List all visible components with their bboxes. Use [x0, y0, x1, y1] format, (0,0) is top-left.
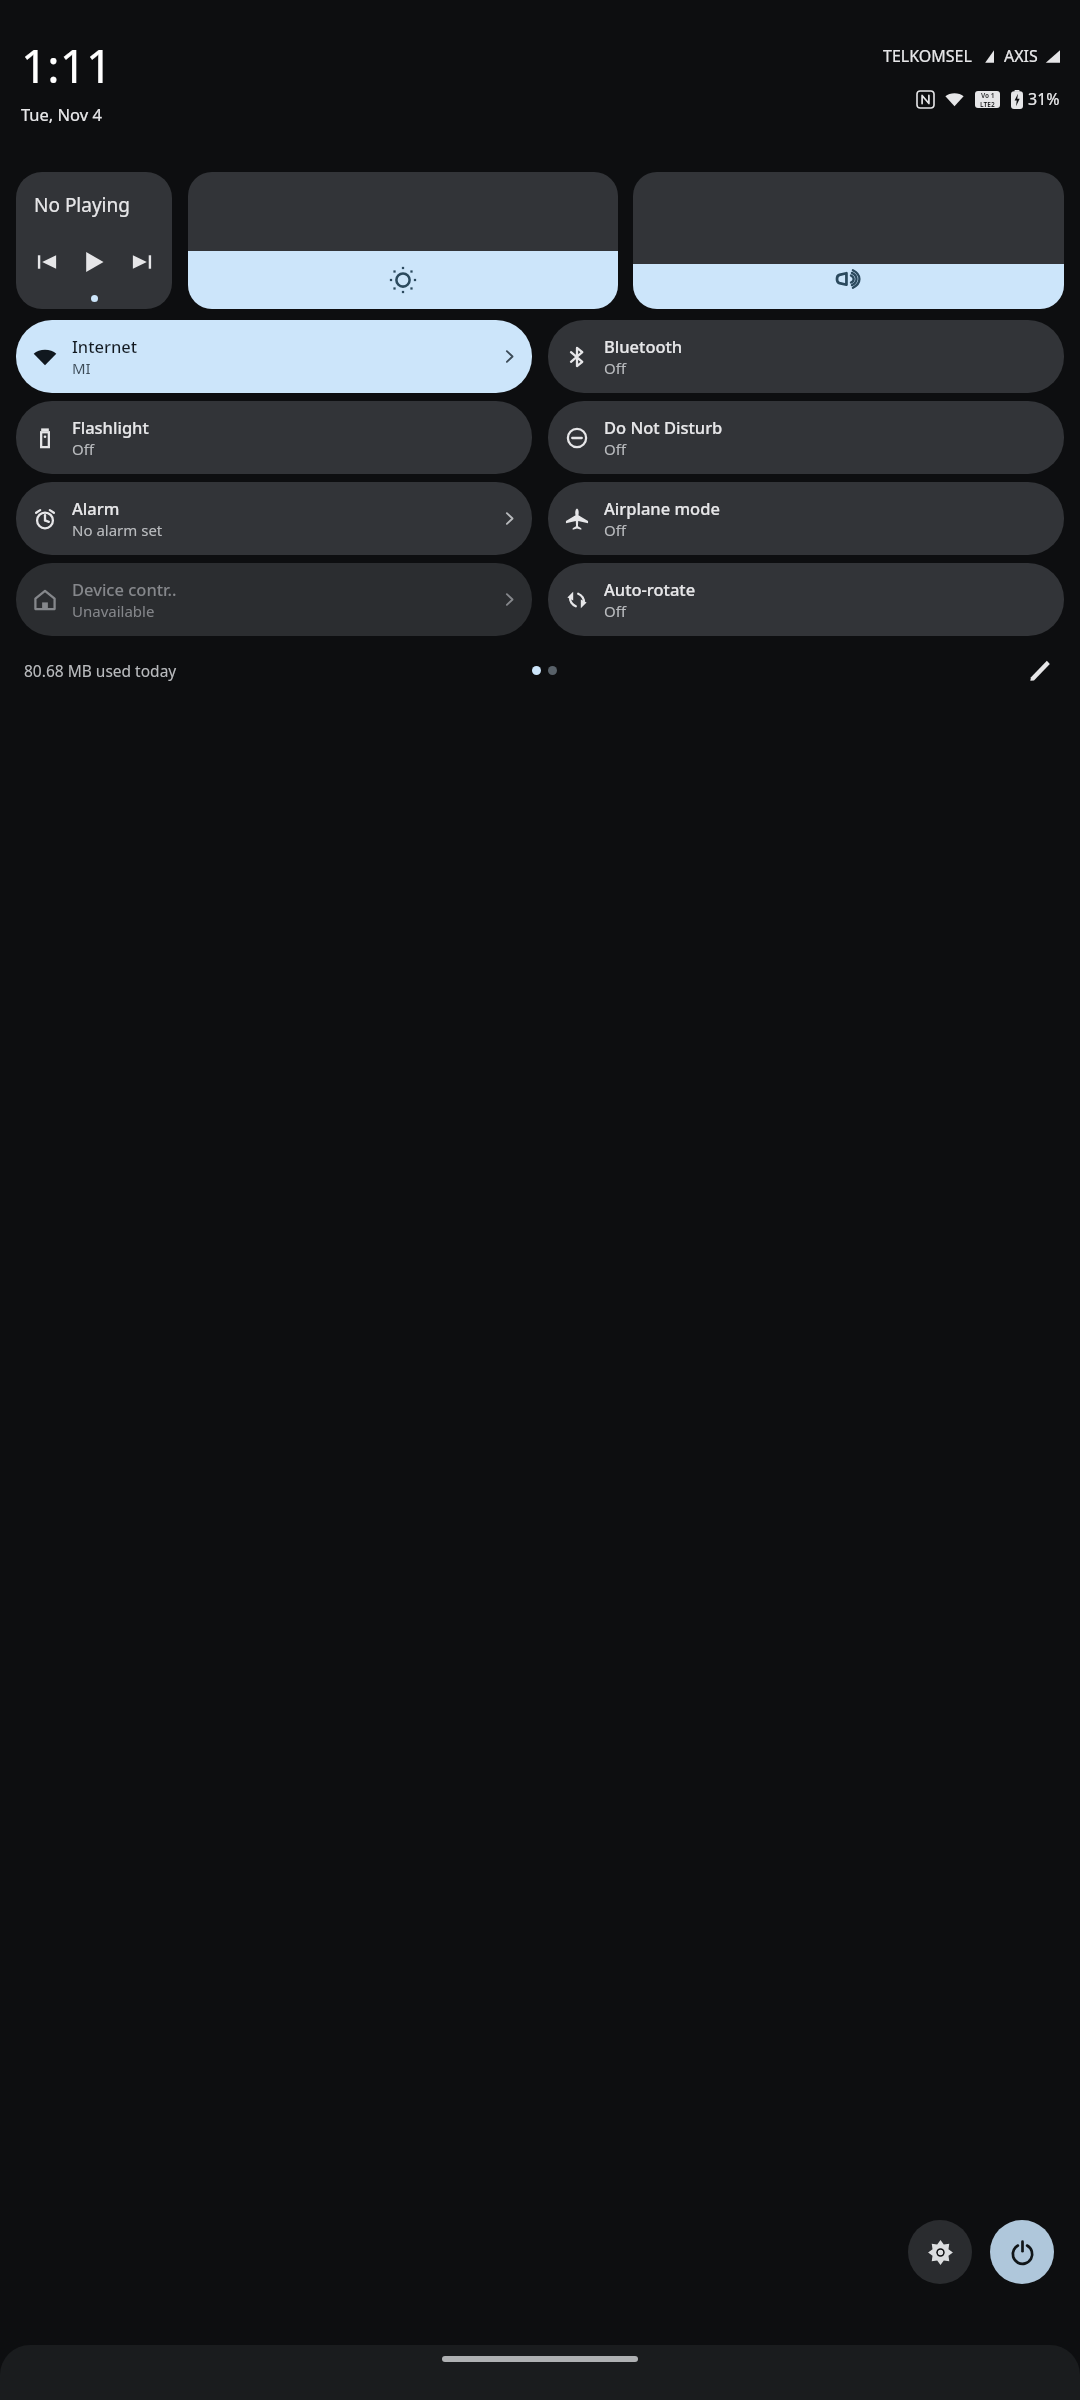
staticText: Internet	[72, 335, 138, 357]
button[interactable]: Device contr..	[16, 563, 532, 636]
staticText: MI	[72, 358, 91, 378]
button[interactable]: Play	[77, 245, 111, 279]
button[interactable]: No Playing	[16, 172, 172, 309]
staticText: 80.68 MB used today	[24, 660, 177, 681]
staticText: Device contr..	[72, 578, 177, 600]
button[interactable]: Power	[990, 2220, 1054, 2284]
staticText: Off	[604, 358, 627, 378]
staticText: Alarm	[72, 497, 120, 519]
button[interactable]: Internet	[16, 320, 532, 393]
staticText: Auto-rotate	[604, 578, 696, 600]
staticText: Vo 1	[981, 91, 995, 100]
button[interactable]: Edit tiles	[1022, 653, 1056, 687]
button[interactable]: Next	[125, 245, 159, 279]
staticText: 31%	[1028, 88, 1060, 110]
button[interactable]: Airplane mode	[548, 482, 1064, 555]
staticText: LTE2	[980, 100, 995, 108]
staticText: Bluetooth	[604, 335, 683, 357]
staticText: No Playing	[34, 192, 130, 218]
staticText: Off	[604, 601, 627, 621]
button[interactable]: Previous	[30, 245, 64, 279]
button[interactable]: Alarm	[16, 482, 532, 555]
button[interactable]: Slider	[633, 172, 1064, 309]
staticText: TELKOMSEL	[883, 45, 972, 67]
button[interactable]: Flashlight	[16, 401, 532, 474]
staticText: Off	[604, 439, 627, 459]
button[interactable]: Bluetooth	[548, 320, 1064, 393]
button[interactable]: Settings	[908, 2220, 972, 2284]
staticText: AXIS	[1004, 45, 1038, 67]
staticText: Unavailable	[72, 601, 155, 621]
staticText: Tue, Nov 4	[21, 103, 102, 125]
staticText: No alarm set	[72, 520, 163, 540]
staticText: 1:11	[21, 34, 113, 97]
button[interactable]: Slider	[188, 172, 618, 309]
staticText: Off	[604, 520, 627, 540]
staticText: Off	[72, 439, 95, 459]
staticText: Airplane mode	[604, 497, 720, 519]
button[interactable]: Auto-rotate	[548, 563, 1064, 636]
button[interactable]: Do Not Disturb	[548, 401, 1064, 474]
staticText: Do Not Disturb	[604, 416, 723, 438]
staticText: Flashlight	[72, 416, 149, 438]
